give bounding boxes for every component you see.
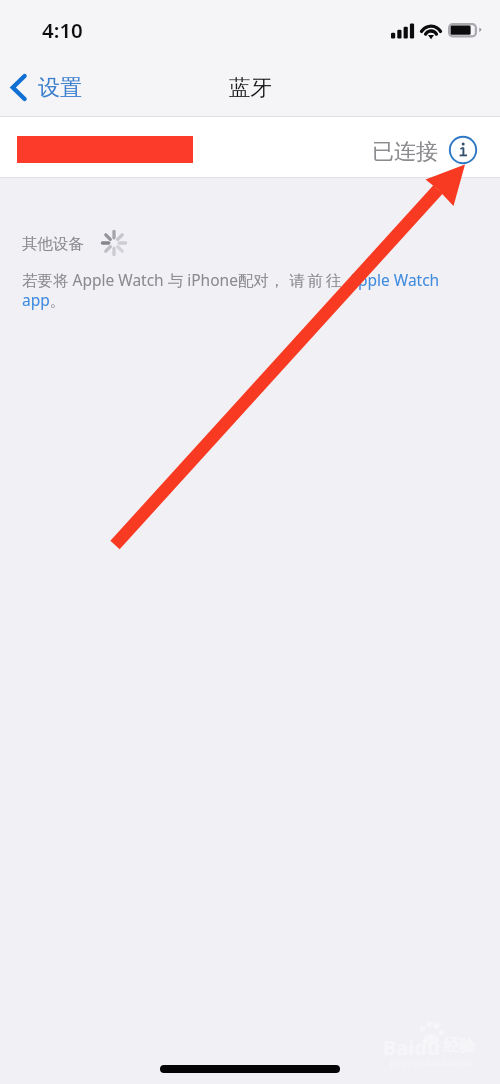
- staticText: 已连接: [372, 138, 438, 166]
- button[interactable]: 已连接: [0, 117, 500, 178]
- button[interactable]: 设置: [0, 65, 92, 111]
- staticText: 设置: [38, 74, 82, 102]
- button[interactable]: 若要将 Apple Watch 与 iPhone配对，请前往 Apple Wat…: [22, 269, 462, 311]
- button[interactable]: Device info: [447, 134, 479, 166]
- staticText: 蓝牙: [229, 74, 272, 101]
- staticText: 其他设备: [22, 234, 84, 254]
- staticText: 4:10: [42, 16, 83, 44]
